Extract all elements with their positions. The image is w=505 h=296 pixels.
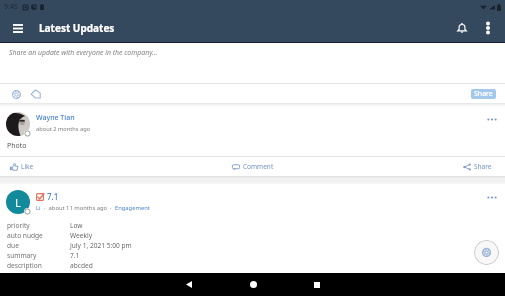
- button[interactable]: New post: [474, 240, 499, 265]
- button[interactable]: Share: [337, 157, 505, 176]
- button[interactable]: More options: [475, 14, 501, 42]
- button[interactable]: Back: [173, 273, 205, 296]
- staticText: Share: [474, 89, 493, 99]
- staticText: description: [7, 261, 42, 270]
- staticText: priority: [7, 221, 30, 230]
- staticText: Li: [36, 204, 41, 212]
- staticText: July 1, 2021 5:00 pm: [70, 241, 132, 250]
- button[interactable]: Share: [471, 89, 496, 99]
- button[interactable]: Like: [0, 157, 169, 176]
- staticText: Share an update with everyone in the com…: [9, 48, 158, 57]
- button[interactable]: Notifications: [449, 14, 475, 42]
- staticText: 7.1: [47, 191, 59, 202]
- button[interactable]: Comment: [169, 157, 337, 176]
- staticText: Photo: [7, 141, 27, 151]
- staticText: abcded: [70, 261, 93, 270]
- staticText: about 2 months ago: [36, 125, 91, 133]
- staticText: Latest Updates: [39, 21, 115, 35]
- staticText: due: [7, 241, 19, 250]
- staticText: summary: [7, 251, 37, 260]
- staticText: Engagement: [115, 204, 150, 212]
- staticText: Wayne Tian: [36, 113, 75, 123]
- staticText: Low: [70, 221, 83, 230]
- button[interactable]: Menu: [0, 14, 36, 42]
- button[interactable]: Home: [237, 273, 269, 296]
- staticText: Share: [474, 162, 492, 171]
- button[interactable]: Post options: [485, 112, 499, 126]
- staticText: 9:45: [4, 2, 18, 12]
- button[interactable]: Attach photo: [8, 86, 24, 102]
- staticText: Like: [21, 162, 34, 171]
- staticText: auto nudge: [7, 231, 43, 240]
- staticText: Weekly: [70, 231, 93, 240]
- staticText: 7.1: [70, 251, 80, 260]
- button[interactable]: Recent apps: [301, 273, 333, 296]
- staticText: Comment: [243, 162, 274, 171]
- button[interactable]: Add tag: [28, 86, 44, 102]
- staticText: · about 11 months ago ·: [41, 204, 115, 212]
- staticText: L: [15, 195, 21, 210]
- button[interactable]: Task options: [485, 190, 499, 204]
